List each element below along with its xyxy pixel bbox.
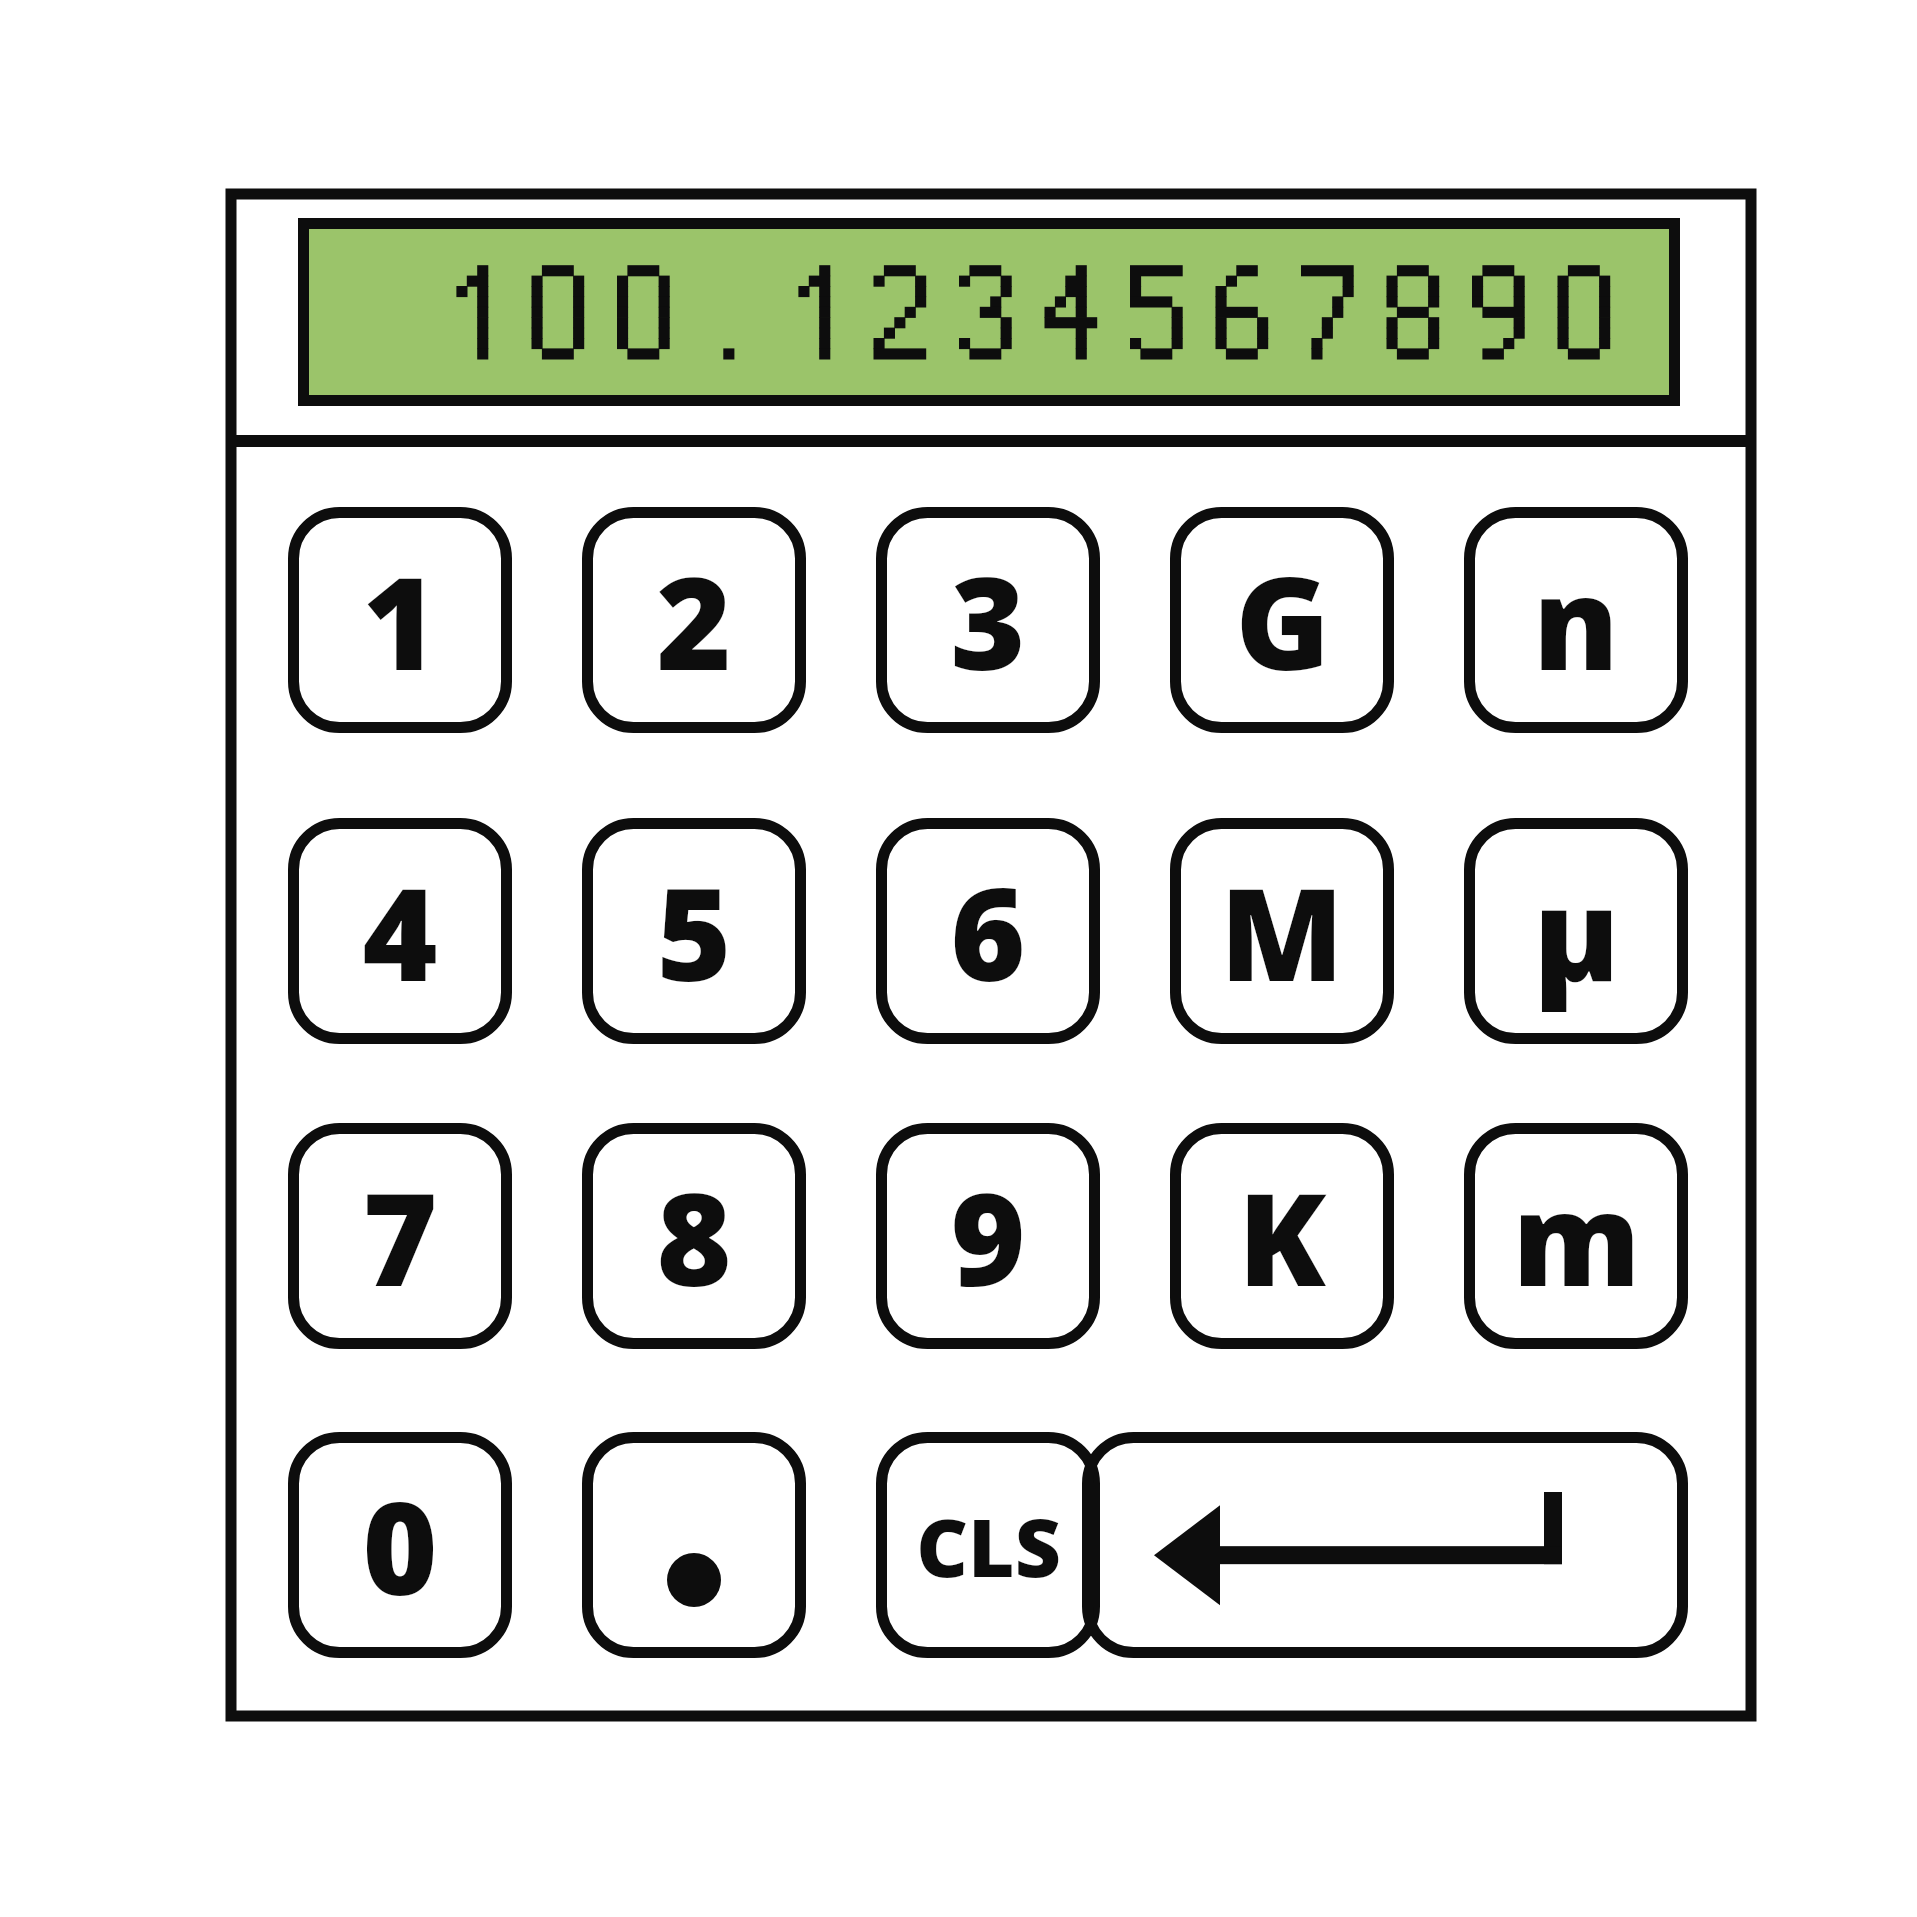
button[interactable]: 6 bbox=[876, 818, 1100, 1044]
staticText: 3 bbox=[950, 533, 1026, 707]
staticText: M bbox=[1220, 844, 1344, 1018]
button[interactable]: 1 bbox=[288, 507, 512, 733]
staticText: 4 bbox=[362, 844, 438, 1018]
button[interactable]: 3 bbox=[876, 507, 1100, 733]
button[interactable]: G bbox=[1170, 507, 1394, 733]
button[interactable]: 2 bbox=[582, 507, 806, 733]
staticText: n bbox=[1533, 533, 1619, 707]
button[interactable]: 5 bbox=[582, 818, 806, 1044]
button[interactable]: 0 bbox=[288, 1432, 512, 1658]
staticText: 8 bbox=[656, 1149, 732, 1323]
button[interactable]: n bbox=[1464, 507, 1688, 733]
button[interactable]: 4 bbox=[288, 818, 512, 1044]
button[interactable]: K bbox=[1170, 1123, 1394, 1349]
staticText: µ bbox=[1533, 844, 1620, 1018]
button[interactable]: 9 bbox=[876, 1123, 1100, 1349]
staticText: CLS bbox=[916, 1491, 1061, 1600]
staticText: m bbox=[1512, 1149, 1641, 1323]
staticText: K bbox=[1238, 1149, 1326, 1323]
staticText: G bbox=[1235, 533, 1330, 707]
button[interactable]: Decimal point bbox=[582, 1432, 806, 1658]
staticText: 5 bbox=[656, 844, 732, 1018]
staticText: 2 bbox=[656, 533, 732, 707]
staticText: 9 bbox=[950, 1149, 1026, 1323]
staticText: 6 bbox=[950, 844, 1026, 1018]
button[interactable]: M bbox=[1170, 818, 1394, 1044]
staticText: 1 bbox=[362, 533, 438, 707]
button[interactable]: Enter bbox=[1082, 1432, 1688, 1658]
button[interactable]: 7 bbox=[288, 1123, 512, 1349]
button[interactable]: CLS bbox=[876, 1432, 1100, 1658]
button[interactable]: 8 bbox=[582, 1123, 806, 1349]
button[interactable]: m bbox=[1464, 1123, 1688, 1349]
staticText: 7 bbox=[362, 1149, 438, 1323]
staticText: 0 bbox=[362, 1458, 438, 1632]
button[interactable]: µ bbox=[1464, 818, 1688, 1044]
